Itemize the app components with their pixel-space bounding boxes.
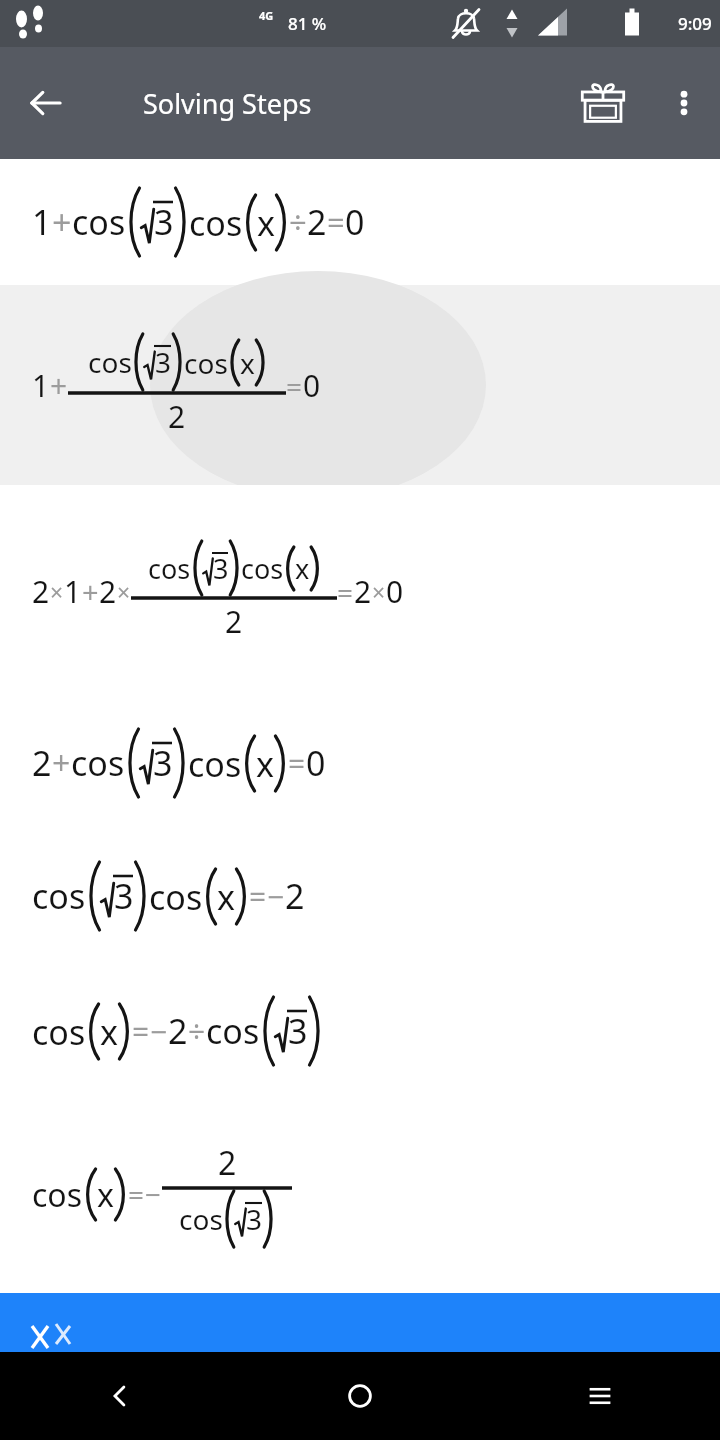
- staticText: 81 %: [288, 12, 327, 35]
- button[interactable]: Watch reward ad: [572, 72, 634, 134]
- staticText: cos: [148, 550, 191, 587]
- staticText: 3: [213, 550, 229, 587]
- button[interactable]: cos: [0, 963, 720, 1099]
- staticText: ×: [372, 576, 386, 607]
- staticText: 2: [285, 873, 305, 919]
- staticText: x: [256, 741, 274, 787]
- button[interactable]: 2: [0, 485, 720, 697]
- staticText: 9:09: [678, 12, 712, 35]
- staticText: 0: [386, 571, 404, 612]
- staticText: 2: [168, 1008, 188, 1054]
- staticText: x: [97, 1173, 114, 1217]
- staticText: 0: [306, 740, 326, 786]
- staticText: 3: [246, 1200, 263, 1238]
- staticText: x: [240, 344, 255, 382]
- staticText: 0: [345, 199, 365, 245]
- staticText: 1: [32, 199, 52, 245]
- button[interactable]: 1: [0, 285, 720, 485]
- staticText: +: [52, 741, 71, 785]
- staticText: =: [249, 876, 267, 917]
- staticText: 3: [155, 343, 172, 381]
- staticText: ×: [117, 576, 131, 607]
- staticText: 2: [225, 601, 243, 642]
- button[interactable]: 1: [0, 159, 720, 285]
- staticText: +: [82, 572, 99, 611]
- staticText: =: [327, 201, 345, 243]
- staticText: cos: [206, 1008, 260, 1054]
- staticText: 2: [354, 571, 372, 612]
- staticText: ÷: [289, 201, 307, 243]
- staticText: cos: [188, 741, 242, 787]
- staticText: 3: [114, 873, 134, 919]
- staticText: 3: [153, 740, 173, 786]
- staticText: +: [50, 365, 68, 406]
- staticText: cos: [71, 740, 125, 786]
- staticText: 2: [99, 571, 117, 612]
- button[interactable]: Back: [0, 1352, 240, 1440]
- staticText: +: [52, 199, 72, 245]
- staticText: 2: [218, 1141, 237, 1185]
- staticText: 1: [32, 365, 50, 406]
- staticText: cos: [149, 874, 203, 920]
- staticText: cos: [184, 344, 228, 382]
- staticText: x: [295, 550, 310, 587]
- staticText: 3: [154, 199, 174, 245]
- button[interactable]: cos: [0, 829, 720, 963]
- staticText: cos: [241, 550, 284, 587]
- button[interactable]: Home: [240, 1352, 480, 1440]
- staticText: =: [288, 743, 306, 784]
- staticText: cos: [32, 873, 86, 919]
- button[interactable]: cos: [0, 1099, 720, 1289]
- staticText: 2: [307, 199, 327, 245]
- button[interactable]: More options: [656, 75, 712, 131]
- staticText: 4G: [259, 8, 274, 23]
- staticText: −: [150, 1011, 168, 1052]
- button[interactable]: Advertisement: [0, 1293, 720, 1352]
- staticText: −: [267, 876, 285, 917]
- staticText: =: [337, 573, 354, 611]
- staticText: −: [145, 1175, 162, 1213]
- staticText: cos: [88, 343, 132, 381]
- staticText: 2: [32, 740, 52, 786]
- staticText: 2: [32, 571, 50, 612]
- button[interactable]: Back: [18, 75, 74, 131]
- staticText: =: [286, 367, 303, 405]
- staticText: cos: [189, 200, 243, 246]
- staticText: ÷: [188, 1011, 206, 1052]
- staticText: ×: [50, 576, 64, 607]
- staticText: Solving Steps: [143, 85, 312, 122]
- staticText: cos: [179, 1200, 223, 1238]
- staticText: cos: [72, 199, 126, 245]
- button[interactable]: Recent apps: [480, 1352, 720, 1440]
- staticText: cos: [32, 1009, 86, 1055]
- staticText: =: [128, 1175, 145, 1213]
- staticText: 0: [303, 365, 321, 406]
- staticText: 1: [64, 571, 82, 612]
- staticText: =: [132, 1011, 150, 1052]
- staticText: 2: [168, 396, 186, 437]
- button[interactable]: 2: [0, 697, 720, 829]
- staticText: x: [100, 1009, 118, 1055]
- staticText: x: [217, 874, 235, 920]
- staticText: x: [257, 200, 275, 246]
- staticText: cos: [32, 1173, 83, 1217]
- staticText: 3: [288, 1008, 308, 1054]
